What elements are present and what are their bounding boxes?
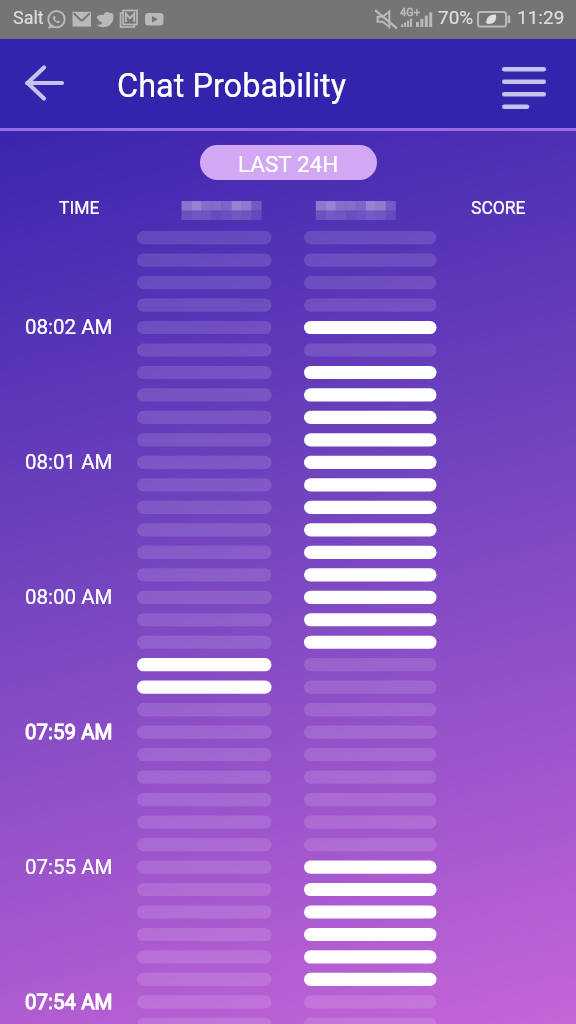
staticText: 08:00 AM: [25, 585, 113, 609]
button[interactable]: Menu: [490, 49, 558, 127]
staticText: 4G+: [400, 6, 420, 19]
staticText: SCORE: [471, 198, 526, 219]
staticText: Salt: [13, 7, 44, 28]
staticText: 70%: [438, 6, 474, 28]
button[interactable]: LAST 24H: [200, 145, 377, 180]
staticText: Chat Probability: [117, 67, 347, 105]
staticText: TIME: [59, 198, 100, 219]
staticText: 08:02 AM: [25, 315, 113, 339]
staticText: 08:01 AM: [25, 450, 113, 474]
staticText: LAST 24H: [238, 151, 339, 177]
staticText: 07:55 AM: [25, 855, 113, 879]
staticText: 07:59 AM: [25, 720, 113, 744]
staticText: 11:29: [517, 6, 565, 28]
button[interactable]: Back: [13, 52, 75, 114]
staticText: 07:54 AM: [25, 990, 113, 1014]
